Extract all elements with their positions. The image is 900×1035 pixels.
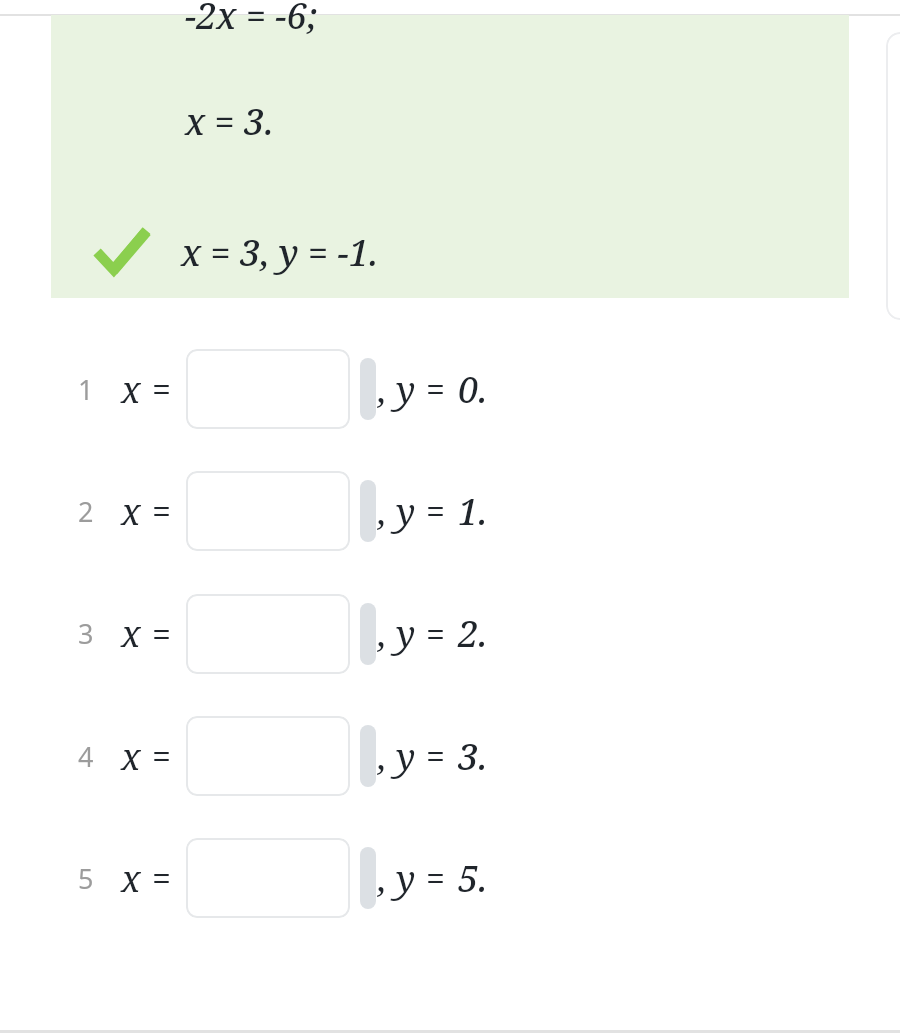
staticText: x: [121, 609, 141, 658]
staticText: , y: [378, 854, 416, 903]
button[interactable]: 3: [0, 572, 900, 695]
staticText: 5: [78, 860, 94, 897]
staticText: =: [152, 733, 172, 779]
staticText: x: [121, 732, 141, 781]
button[interactable]: Answer input 5: [186, 838, 350, 918]
staticText: x: [121, 365, 141, 414]
staticText: 5.: [458, 854, 488, 903]
button[interactable]: Answer input 2: [186, 471, 350, 551]
staticText: , y: [378, 487, 416, 536]
button[interactable]: Answer input 3: [186, 594, 350, 674]
button[interactable]: 5: [0, 817, 900, 939]
staticText: 3: [78, 615, 94, 652]
button[interactable]: 1: [0, 328, 900, 450]
staticText: =: [152, 855, 172, 901]
staticText: =: [426, 611, 446, 657]
staticText: −2x = −6;: [185, 0, 318, 40]
button[interactable]: Answer input 1: [186, 349, 350, 429]
button[interactable]: 2: [0, 450, 900, 572]
staticText: x = 3, y = −1.: [181, 228, 379, 277]
staticText: =: [152, 366, 172, 412]
staticText: =: [152, 611, 172, 657]
button[interactable]: 4: [0, 695, 900, 817]
staticText: =: [426, 855, 446, 901]
staticText: 1: [78, 371, 94, 408]
staticText: , y: [378, 732, 416, 781]
staticText: =: [426, 733, 446, 779]
staticText: =: [426, 366, 446, 412]
staticText: 1.: [458, 487, 488, 536]
staticText: =: [426, 488, 446, 534]
staticText: x: [121, 854, 141, 903]
staticText: 4: [78, 738, 94, 775]
staticText: 3.: [458, 732, 488, 781]
staticText: 2.: [458, 609, 488, 658]
staticText: x = 3.: [185, 97, 274, 146]
staticText: 0.: [458, 365, 488, 414]
button[interactable]: Hint card: [886, 32, 900, 320]
staticText: , y: [378, 609, 416, 658]
staticText: 2: [78, 493, 94, 530]
staticText: =: [152, 488, 172, 534]
staticText: x: [121, 487, 141, 536]
button[interactable]: Answer input 4: [186, 716, 350, 796]
staticText: , y: [378, 365, 416, 414]
